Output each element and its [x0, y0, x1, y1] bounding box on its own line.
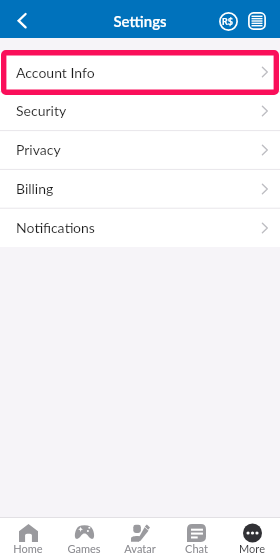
button[interactable]: Games — [56, 518, 112, 555]
button[interactable]: Account Info — [0, 53, 280, 91]
button[interactable]: Notifications — [0, 208, 280, 247]
staticText: Home — [13, 542, 43, 555]
staticText: Account Info — [16, 64, 95, 81]
staticText: Chat — [185, 542, 208, 555]
button[interactable]: Robux balance — [218, 8, 238, 34]
button[interactable]: Billing — [0, 169, 280, 208]
button[interactable]: Avatar — [112, 518, 168, 555]
staticText: Settings — [113, 12, 167, 30]
button[interactable]: Privacy — [0, 130, 280, 169]
staticText: Notifications — [16, 219, 95, 236]
button[interactable]: Menu — [247, 8, 267, 34]
staticText: Security — [16, 102, 67, 119]
staticText: Privacy — [16, 141, 61, 158]
button[interactable]: More — [224, 518, 280, 555]
button[interactable]: Chat — [168, 518, 224, 555]
staticText: More — [239, 542, 265, 555]
button[interactable]: Back — [0, 0, 40, 38]
staticText: Avatar — [124, 542, 156, 555]
staticText: R$ — [222, 16, 234, 27]
staticText: Billing — [16, 180, 54, 197]
button[interactable]: Security — [0, 91, 280, 130]
button[interactable]: Home — [0, 518, 56, 555]
staticText: Games — [67, 542, 101, 555]
